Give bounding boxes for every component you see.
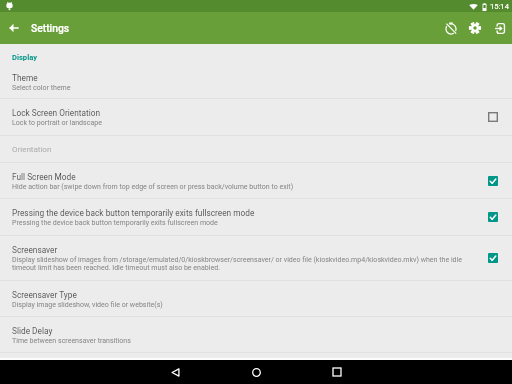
button[interactable]: Home [236,360,276,384]
button[interactable]: Back [155,360,195,384]
staticText: 15:14 [490,2,509,11]
button[interactable]: Settings [463,12,487,44]
staticText: Slide Delay [12,326,53,336]
button[interactable]: Lock Screen Orientation [0,99,512,135]
button[interactable]: Toggle [482,170,504,192]
staticText: Theme [12,73,38,83]
staticText: Pressing the device back button temporar… [12,208,255,218]
button[interactable]: Back [0,12,28,44]
staticText: Pressing the device back button temporar… [12,218,218,226]
staticText: timeout limit has been reached. Idle tim… [12,263,221,271]
button[interactable]: Toggle [482,206,504,228]
staticText: Screensaver Type [12,290,77,300]
staticText: Select color theme [12,83,71,91]
button[interactable]: Exit app [487,12,511,44]
staticText: Full Screen Mode [12,172,76,182]
staticText: Lock to portrait or landscape [12,118,102,126]
staticText: Lock Screen Orientation [12,108,101,118]
button[interactable]: Screensaver Type [0,281,512,316]
staticText: Hide action bar (swipe down from top edg… [12,182,294,190]
button[interactable]: Timer off [439,12,463,44]
staticText: Orientation [12,145,52,154]
button[interactable]: Theme [0,65,512,98]
staticText: Display slideshow of images from /storag… [12,255,463,263]
staticText: Display [12,53,37,62]
button[interactable]: Full Screen Mode [0,163,512,198]
button[interactable]: Toggle [482,106,504,128]
button[interactable]: Screensaver [0,236,512,280]
button[interactable]: Recents [317,360,357,384]
staticText: Screensaver [12,245,58,255]
staticText: Time between screensaver transitions [12,336,131,344]
staticText: Settings [31,22,70,34]
button[interactable]: Slide Delay [0,317,512,352]
staticText: Display image slideshow, video file or w… [12,300,163,308]
button[interactable]: Toggle [482,247,504,269]
button[interactable]: Pressing the device back button temporar… [0,199,512,235]
